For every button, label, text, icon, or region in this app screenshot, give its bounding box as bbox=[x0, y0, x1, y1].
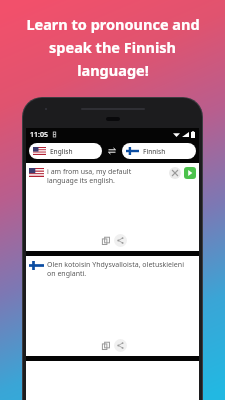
button[interactable]: Share bbox=[114, 339, 127, 352]
button[interactable]: Finnish bbox=[122, 143, 196, 159]
staticText: i am from usa, my default language its e… bbox=[47, 167, 167, 185]
button[interactable]: Copy bbox=[99, 234, 112, 247]
staticText: English bbox=[50, 147, 73, 156]
button[interactable]: Share bbox=[114, 234, 127, 247]
button[interactable]: Play pronunciation bbox=[184, 167, 196, 179]
button[interactable]: English bbox=[29, 143, 102, 159]
button[interactable]: Clear text bbox=[169, 167, 181, 179]
button[interactable]: Copy bbox=[99, 339, 112, 352]
staticText: 11:05 bbox=[30, 130, 48, 140]
staticText: language! bbox=[77, 60, 149, 80]
button[interactable]: Swap languages bbox=[102, 142, 122, 160]
staticText: Finnish bbox=[143, 147, 166, 156]
button[interactable]: Olen kotoisin Yhdysvalloista, oletuskiel… bbox=[26, 256, 199, 356]
staticText: Olen kotoisin Yhdysvalloista, oletuskiel… bbox=[47, 260, 196, 278]
staticText: speak the Finnish bbox=[49, 37, 176, 57]
button[interactable]: i am from usa, my default language its e… bbox=[26, 163, 199, 251]
staticText: Learn to pronounce and bbox=[26, 14, 200, 34]
